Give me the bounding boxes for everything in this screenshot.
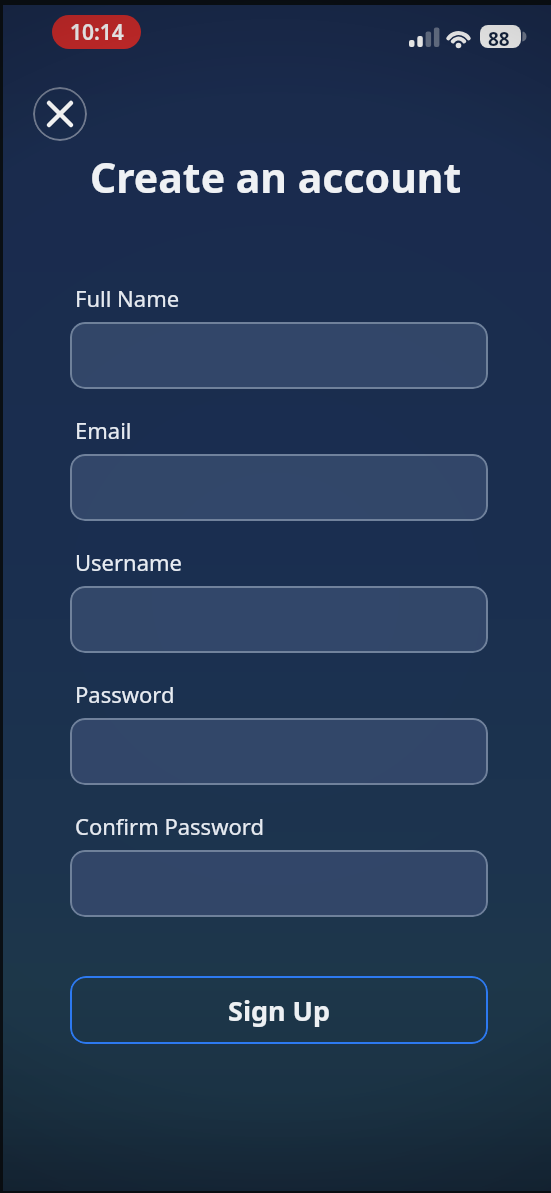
staticText: 10:14 — [70, 18, 124, 47]
staticText: Username — [75, 547, 183, 577]
staticText: Sign Up — [228, 992, 331, 1029]
button[interactable]: 10:14 — [52, 15, 141, 49]
button[interactable] — [70, 454, 488, 521]
staticText: 88 — [488, 26, 510, 52]
button[interactable]: Sign Up — [70, 976, 488, 1044]
button[interactable] — [70, 586, 488, 653]
staticText: Password — [75, 679, 175, 709]
button[interactable] — [70, 322, 488, 389]
button[interactable] — [70, 850, 488, 917]
staticText: Confirm Password — [75, 811, 264, 841]
button[interactable] — [33, 87, 87, 141]
staticText: Full Name — [75, 283, 180, 313]
button[interactable] — [70, 718, 488, 785]
staticText: Create an account — [90, 149, 462, 205]
staticText: Email — [75, 415, 132, 445]
